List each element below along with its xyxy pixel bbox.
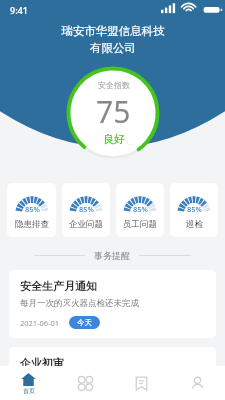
button[interactable]: 企业初审	[9, 347, 216, 400]
staticText: 隐患排查	[15, 219, 49, 230]
staticText: 首页	[23, 387, 35, 395]
button[interactable]: 85%	[116, 183, 164, 237]
staticText: 事务提醒	[94, 250, 130, 261]
staticText: 85%	[133, 204, 148, 214]
button[interactable]: 85%	[170, 183, 218, 237]
staticText: 巡检	[186, 219, 203, 230]
staticText: 良好	[103, 132, 125, 146]
staticText: 瑞安市华盟信息科技	[61, 24, 165, 38]
staticText: 员工问题	[123, 219, 157, 230]
staticText: 85%	[79, 204, 94, 214]
button[interactable]: 85%	[7, 183, 56, 237]
button[interactable]: 首页	[0, 366, 57, 400]
button[interactable]: 安全生产月通知	[9, 270, 216, 338]
staticText: 工程师提交企业初审	[20, 375, 97, 386]
button[interactable]: 消息	[113, 366, 169, 400]
staticText: 今天	[77, 318, 92, 327]
staticText: 每月一次的灭火器点检还未完成	[20, 298, 139, 309]
staticText: 企业问题	[69, 219, 103, 230]
button[interactable]: 应用	[57, 366, 113, 400]
button[interactable]: 我的	[169, 366, 225, 400]
staticText: 9:41	[10, 4, 28, 16]
staticText: 有限公司	[90, 41, 136, 55]
staticText: 安全指数	[98, 80, 130, 90]
staticText: 2021-06-01	[20, 318, 60, 328]
staticText: 85%	[25, 204, 40, 214]
staticText: 企业初审	[20, 356, 64, 370]
staticText: 安全生产月通知	[20, 279, 97, 293]
button[interactable]: 85%	[62, 183, 110, 237]
staticText: 75	[96, 91, 131, 132]
staticText: 85%	[187, 204, 202, 214]
